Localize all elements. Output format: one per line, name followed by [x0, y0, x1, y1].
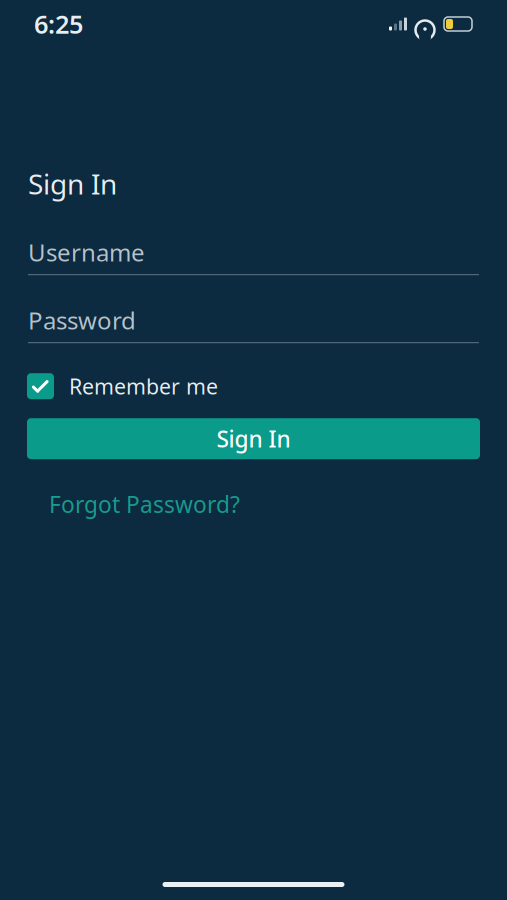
- staticText: Forgot Password?: [49, 489, 240, 519]
- staticText: Sign In: [216, 424, 290, 454]
- staticText: Sign In: [28, 165, 117, 202]
- button[interactable]: Sign In: [27, 418, 480, 459]
- staticText: Username: [28, 236, 145, 268]
- button[interactable]: Remember me: [0, 367, 507, 405]
- staticText: 6:25: [34, 7, 83, 41]
- button[interactable]: Forgot Password?: [0, 487, 507, 521]
- staticText: Password: [28, 304, 136, 336]
- staticText: Remember me: [69, 372, 218, 400]
